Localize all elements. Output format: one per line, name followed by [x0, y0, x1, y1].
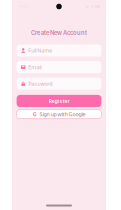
staticText: Register	[48, 97, 69, 105]
staticText: Full Name	[28, 47, 52, 54]
staticText: Create New Account	[31, 29, 87, 36]
button[interactable]: Password	[17, 78, 101, 90]
button[interactable]: Email	[17, 61, 101, 73]
staticText: Password	[28, 80, 52, 87]
staticText: G	[33, 111, 37, 118]
button[interactable]: Register	[17, 95, 101, 107]
button[interactable]: G	[17, 109, 101, 119]
staticText: Sign up with Google	[39, 111, 85, 118]
button[interactable]: Full Name	[17, 44, 101, 56]
staticText: Email	[28, 64, 41, 71]
